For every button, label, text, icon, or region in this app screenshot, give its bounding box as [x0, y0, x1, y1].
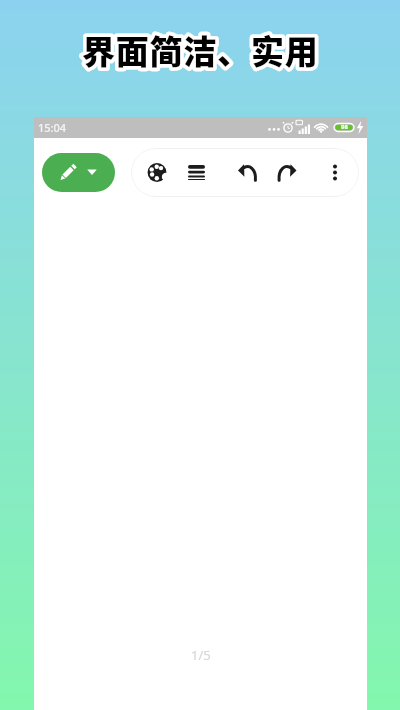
button[interactable]: [267, 148, 313, 197]
staticText: 15:04: [38, 120, 67, 135]
staticText: 98: [338, 123, 351, 131]
staticText: 界面简洁、实用: [82, 26, 319, 74]
button[interactable]: [221, 148, 267, 197]
button[interactable]: [42, 153, 115, 192]
button[interactable]: [131, 148, 176, 197]
button[interactable]: [176, 148, 221, 197]
staticText: 1/5: [191, 646, 211, 664]
button[interactable]: [313, 148, 359, 197]
staticText: 界面简洁、实用: [82, 26, 319, 74]
